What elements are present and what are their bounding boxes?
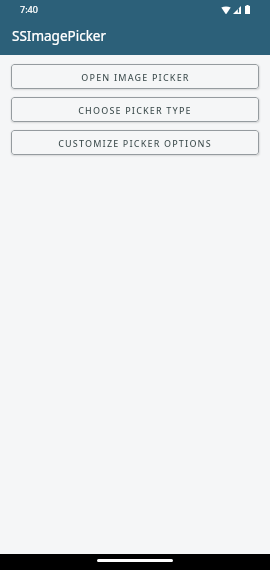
staticText: OPEN IMAGE PICKER — [81, 71, 190, 83]
other: Mobile signal — [233, 6, 241, 14]
staticText: SSImagePicker — [12, 27, 107, 45]
button[interactable]: CUSTOMIZE PICKER OPTIONS — [11, 130, 259, 155]
button[interactable]: OPEN IMAGE PICKER — [11, 64, 259, 89]
staticText: CUSTOMIZE PICKER OPTIONS — [58, 137, 212, 149]
staticText: 7:40 — [20, 3, 38, 15]
staticText: CHOOSE PICKER TYPE — [78, 104, 192, 116]
other: Wi-Fi signal — [221, 6, 231, 14]
other: Battery — [245, 5, 250, 14]
button[interactable]: CHOOSE PICKER TYPE — [11, 97, 259, 122]
